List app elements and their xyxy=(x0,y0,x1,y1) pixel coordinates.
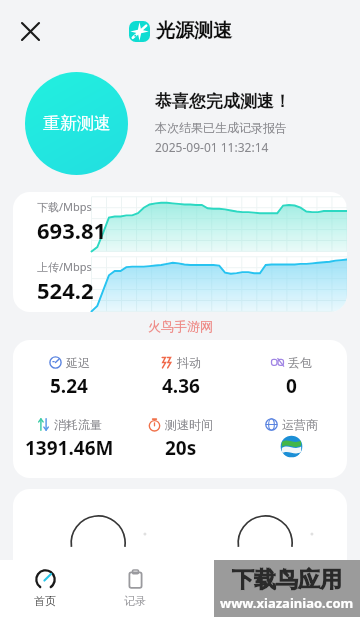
staticText: 4.36 xyxy=(162,373,200,399)
button[interactable]: 记录 xyxy=(90,560,180,617)
staticText: 火鸟手游网 xyxy=(148,318,213,334)
staticText: 0 xyxy=(286,373,297,399)
staticText: 记录 xyxy=(124,594,146,608)
staticText: 1391.46M xyxy=(25,435,114,461)
staticText: 延迟 xyxy=(66,355,90,370)
staticText: 5.24 xyxy=(50,373,88,399)
button[interactable]: Close xyxy=(8,9,52,53)
staticText: 运营商 xyxy=(282,417,318,432)
staticText: 丢包 xyxy=(288,355,312,370)
staticText: 20s xyxy=(165,435,197,461)
button[interactable]: 重新测速 xyxy=(25,72,128,175)
staticText: 本次结果已生成记录报告 xyxy=(155,120,287,135)
button[interactable]: 下载/Mbps xyxy=(13,192,347,312)
staticText: 首页 xyxy=(34,594,56,608)
staticText: 524.2 xyxy=(37,275,94,305)
staticText: 消耗流量 xyxy=(54,417,102,432)
staticText: 上传/Mbps xyxy=(37,259,92,274)
staticText: 恭喜您完成测速！ xyxy=(155,91,291,112)
staticText: 693.81 xyxy=(37,215,107,245)
staticText: 下载/Mbps xyxy=(37,199,92,214)
staticText: 下载鸟应用 xyxy=(232,566,342,594)
staticText: 重新测速 xyxy=(43,113,111,134)
staticText: www.xiazainiao.com xyxy=(220,594,354,612)
staticText: 测速时间 xyxy=(165,417,213,432)
staticText: 2025-09-01 11:32:14 xyxy=(155,139,269,155)
button[interactable] xyxy=(13,489,347,581)
staticText: 光源测速 xyxy=(156,19,232,43)
button[interactable]: 延迟 xyxy=(13,340,347,478)
button[interactable]: 首页 xyxy=(0,560,90,617)
staticText: 抖动 xyxy=(177,355,201,370)
